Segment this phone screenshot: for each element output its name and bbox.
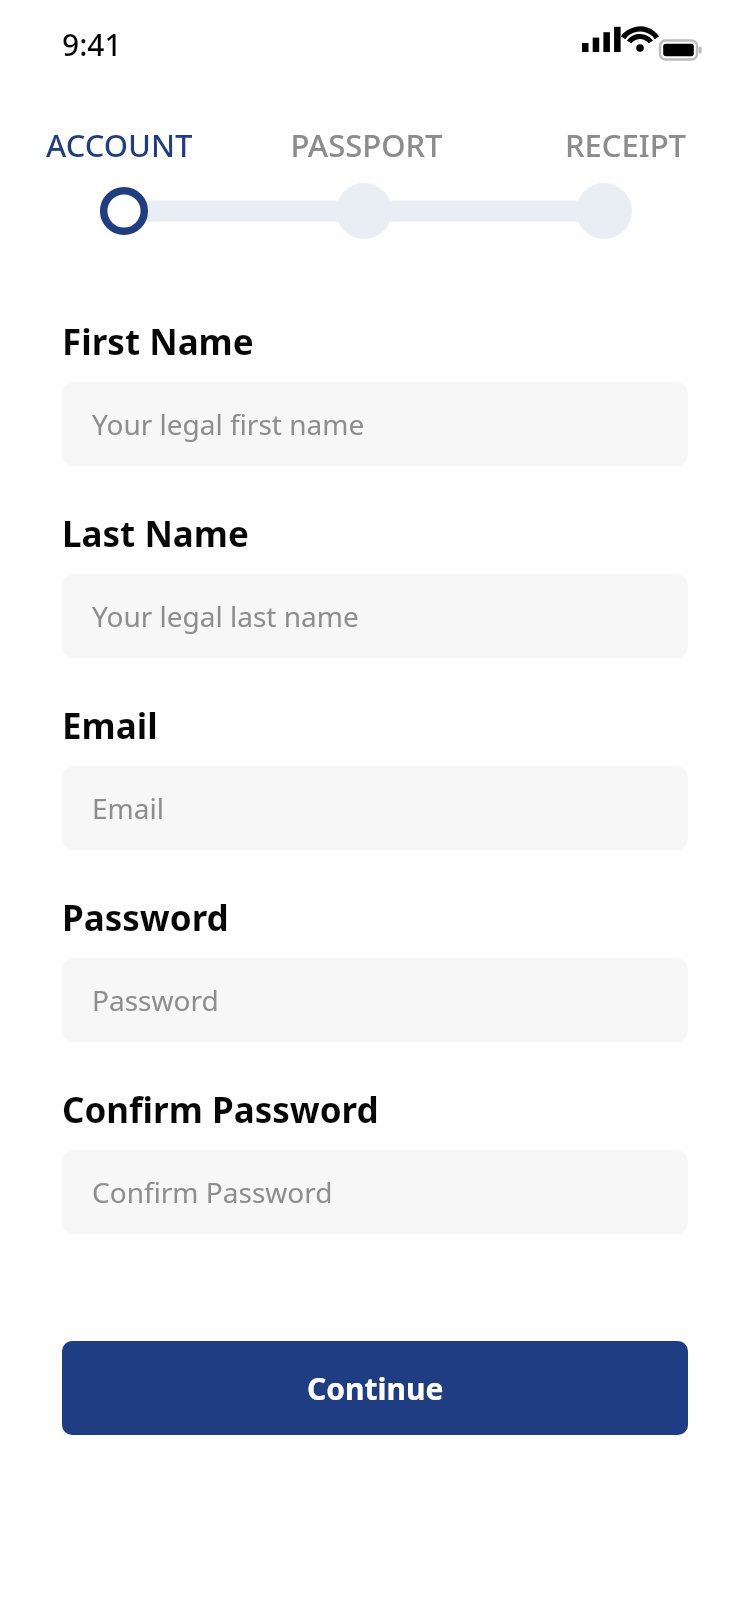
- staticText: Confirm Password: [92, 1173, 333, 1211]
- button[interactable]: PASSPORT: [260, 124, 473, 166]
- button[interactable]: Password: [62, 958, 688, 1042]
- staticText: Last Name: [62, 510, 249, 558]
- other: Progress: step 1 of 3: [0, 180, 750, 242]
- other: Status icons: [582, 26, 700, 56]
- staticText: Your legal first name: [92, 405, 365, 443]
- staticText: 9:41: [62, 24, 122, 65]
- button[interactable]: Email: [62, 766, 688, 850]
- button[interactable]: RECEIPT: [473, 124, 686, 166]
- staticText: Email: [62, 702, 158, 750]
- button[interactable]: ACCOUNT: [46, 124, 260, 166]
- staticText: Confirm Password: [62, 1086, 379, 1134]
- staticText: Continue: [307, 1368, 444, 1409]
- staticText: Password: [62, 894, 229, 942]
- staticText: Password: [92, 981, 219, 1019]
- button[interactable]: Your legal last name: [62, 574, 688, 658]
- staticText: First Name: [62, 318, 254, 366]
- button[interactable]: Continue: [62, 1341, 688, 1435]
- button[interactable]: Confirm Password: [62, 1150, 688, 1234]
- staticText: Your legal last name: [92, 597, 359, 635]
- staticText: ACCOUNT: [46, 124, 260, 166]
- button[interactable]: Your legal first name: [62, 382, 688, 466]
- staticText: RECEIPT: [473, 124, 686, 166]
- staticText: Email: [92, 789, 164, 827]
- staticText: PASSPORT: [260, 124, 473, 166]
